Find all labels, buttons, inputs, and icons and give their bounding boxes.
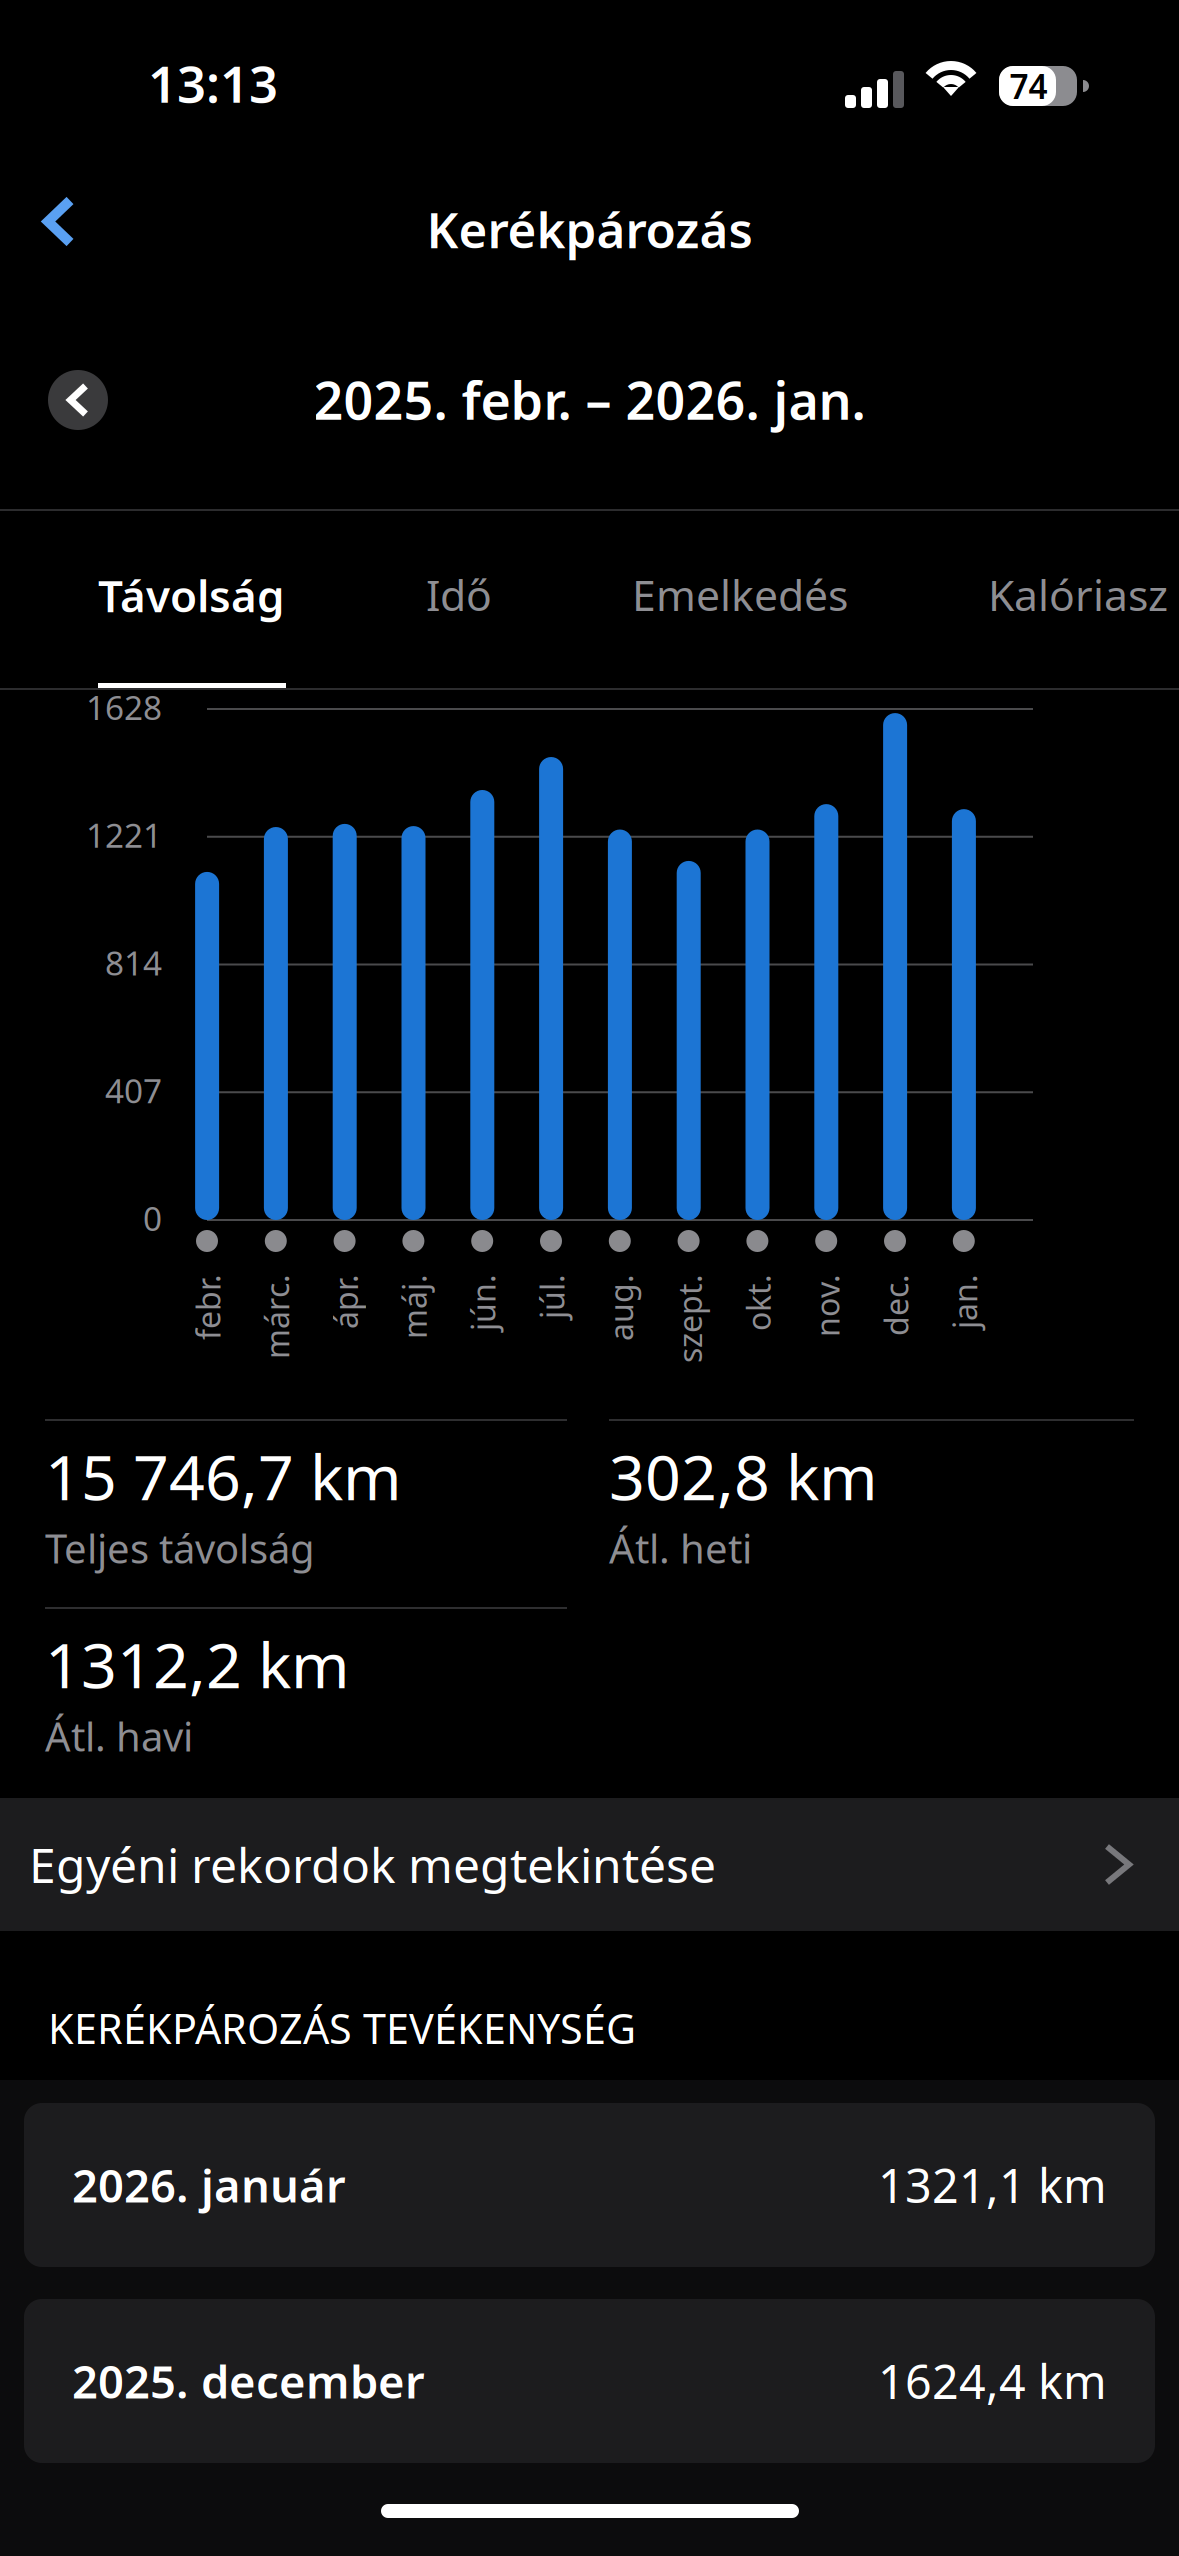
button[interactable]: Kalóriasz xyxy=(988,511,1168,690)
staticText: dec. xyxy=(904,1323,966,1365)
staticText: aug. xyxy=(624,1323,691,1365)
staticText: 2025. december xyxy=(72,2351,425,2411)
staticText: Kalóriasz xyxy=(988,566,1168,623)
staticText: 1628 xyxy=(86,685,162,729)
staticText: 1312,2 km xyxy=(45,1622,350,1706)
staticText: 1221 xyxy=(86,813,162,857)
staticText: Átl. havi xyxy=(45,1709,193,1762)
button[interactable]: 2025. december xyxy=(24,2299,1155,2463)
staticText: 1624,4 km xyxy=(878,2350,1107,2412)
staticText: 407 xyxy=(105,1068,162,1112)
button[interactable]: Previous period xyxy=(48,370,108,430)
staticText: KERÉKPÁROZÁS TEVÉKENYSÉG xyxy=(48,2001,636,2055)
staticText: ápr. xyxy=(361,1323,416,1365)
staticText: 15 746,7 km xyxy=(45,1434,402,1518)
button[interactable]: Idő xyxy=(426,511,492,690)
button[interactable]: Egyéni rekordok megtekintése xyxy=(0,1798,1179,1931)
staticText: 2026. január xyxy=(72,2155,346,2215)
staticText: Kerékpározás xyxy=(426,196,752,262)
staticText: okt. xyxy=(771,1323,828,1365)
staticText: 0 xyxy=(143,1196,162,1240)
button[interactable]: Távolság xyxy=(98,511,286,690)
staticText: nov. xyxy=(834,1323,897,1365)
staticText: jún. xyxy=(496,1323,553,1365)
staticText: Emelkedés xyxy=(632,566,848,623)
staticText: 814 xyxy=(105,940,162,985)
staticText: 302,8 km xyxy=(609,1434,878,1518)
staticText: 74 xyxy=(1009,64,1047,108)
button[interactable]: 2026. január xyxy=(24,2103,1155,2267)
button[interactable]: Emelkedés xyxy=(632,511,848,690)
staticText: 1321,1 km xyxy=(878,2154,1107,2216)
button[interactable]: Back xyxy=(0,168,114,290)
staticText: Átl. heti xyxy=(609,1521,752,1574)
staticText: máj. xyxy=(419,1323,484,1365)
staticText: szept. xyxy=(671,1323,760,1365)
staticText: Egyéni rekordok megtekintése xyxy=(29,1833,716,1896)
staticText: 13:13 xyxy=(148,49,278,117)
staticText: júl. xyxy=(577,1323,622,1365)
staticText: jan. xyxy=(980,1323,1035,1365)
staticText: febr. xyxy=(212,1323,278,1365)
staticText: 2025. febr. – 2026. jan. xyxy=(313,365,865,434)
staticText: Idő xyxy=(426,566,492,623)
staticText: Teljes távolság xyxy=(45,1521,315,1574)
staticText: Távolság xyxy=(98,566,285,624)
staticText: márc. xyxy=(262,1323,347,1365)
